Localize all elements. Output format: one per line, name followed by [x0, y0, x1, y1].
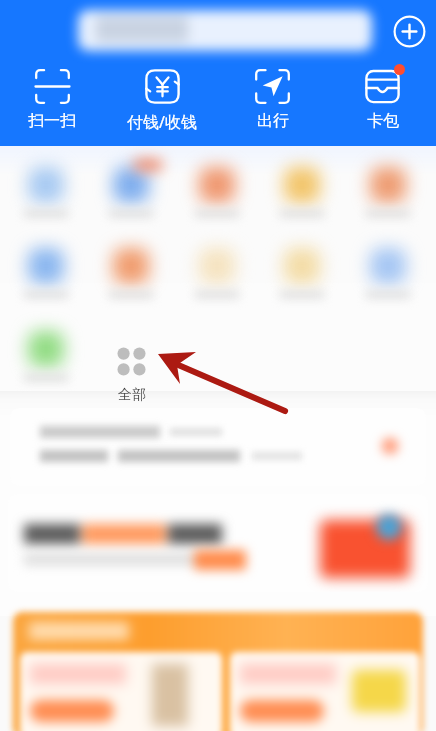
staticText: 扫一扫 — [28, 111, 76, 131]
button[interactable]: 扫一扫 — [0, 69, 107, 139]
button[interactable] — [10, 408, 426, 486]
staticText: 全部 — [118, 386, 146, 404]
button[interactable]: 付钱/收钱 — [107, 69, 217, 139]
staticText: 付钱/收钱 — [127, 111, 197, 133]
button[interactable] — [10, 248, 82, 308]
button[interactable] — [70, 2, 380, 59]
button[interactable]: 卡包 — [327, 69, 436, 139]
button[interactable] — [10, 331, 82, 391]
button[interactable]: 出行 — [217, 69, 327, 139]
button[interactable] — [352, 248, 424, 308]
staticText: 卡包 — [367, 111, 399, 131]
button[interactable] — [352, 167, 424, 227]
button[interactable] — [181, 167, 253, 227]
button[interactable] — [95, 167, 167, 227]
button[interactable] — [266, 167, 338, 227]
button[interactable] — [230, 652, 420, 731]
button[interactable] — [20, 652, 222, 731]
button[interactable]: Add — [393, 15, 426, 48]
button[interactable]: 全部 — [97, 345, 165, 407]
button[interactable] — [10, 167, 82, 227]
button[interactable] — [266, 248, 338, 308]
button[interactable] — [95, 248, 167, 308]
staticText: 出行 — [257, 111, 289, 131]
button[interactable] — [13, 612, 423, 731]
button[interactable] — [181, 248, 253, 308]
button[interactable] — [8, 494, 428, 592]
